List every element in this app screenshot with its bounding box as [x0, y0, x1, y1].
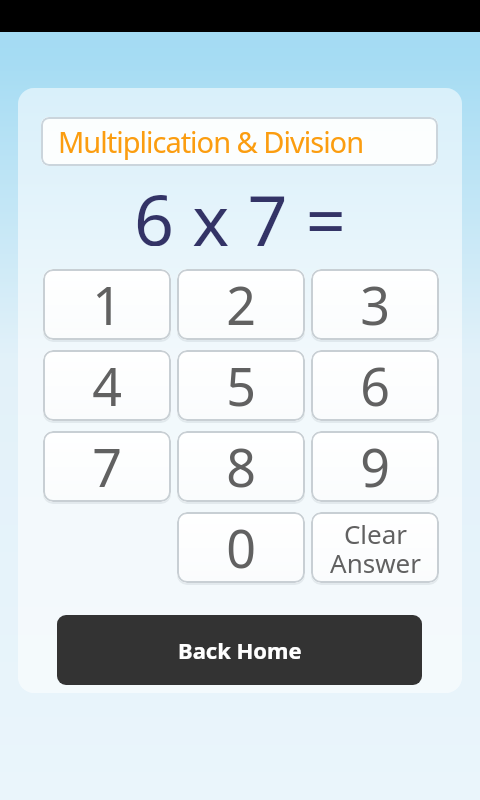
button[interactable]: 0 [177, 512, 305, 583]
staticText: 2 [226, 269, 256, 340]
button[interactable]: 9 [311, 431, 439, 502]
staticText: 9 [360, 431, 390, 502]
button[interactable]: 8 [177, 431, 305, 502]
staticText: 7 [92, 431, 122, 502]
staticText: Back Home [178, 635, 302, 665]
staticText: 0 [226, 512, 256, 583]
staticText: 6 x 7 = [134, 171, 346, 246]
button[interactable]: 4 [43, 350, 171, 421]
button[interactable]: Clear Answer [311, 512, 439, 583]
staticText: 3 [360, 269, 390, 340]
staticText: 4 [92, 350, 122, 421]
button[interactable]: 2 [177, 269, 305, 340]
staticText: 6 [360, 350, 390, 421]
staticText: 1 [92, 269, 122, 340]
button[interactable]: 5 [177, 350, 305, 421]
staticText: 8 [226, 431, 256, 502]
staticText: Multiplication & Division [58, 122, 364, 161]
button[interactable]: 3 [311, 269, 439, 340]
staticText: Clear Answer [330, 516, 421, 580]
button[interactable]: 6 [311, 350, 439, 421]
button[interactable]: 1 [43, 269, 171, 340]
button[interactable]: Back Home [57, 615, 422, 685]
staticText: 5 [226, 350, 256, 421]
button[interactable]: 7 [43, 431, 171, 502]
